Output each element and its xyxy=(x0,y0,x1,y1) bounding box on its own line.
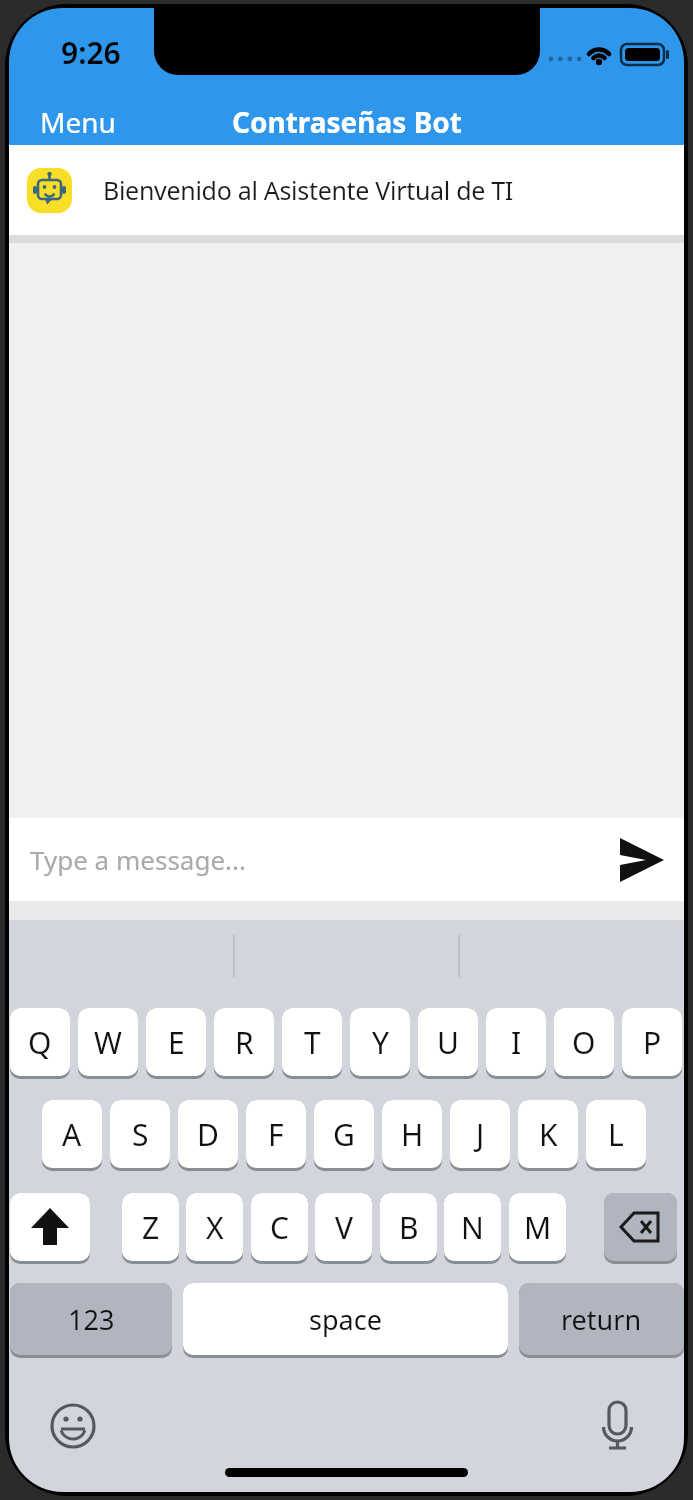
staticText: H xyxy=(401,1114,424,1155)
button[interactable]: B xyxy=(380,1193,437,1261)
button[interactable] xyxy=(43,1396,103,1456)
button[interactable] xyxy=(587,1398,647,1458)
staticText: D xyxy=(197,1114,219,1155)
staticText: L xyxy=(608,1114,624,1155)
button[interactable]: Y xyxy=(350,1008,410,1076)
staticText: R xyxy=(235,1022,254,1063)
staticText: G xyxy=(333,1114,355,1155)
button[interactable]: S xyxy=(110,1100,170,1168)
button[interactable] xyxy=(10,1193,90,1261)
button[interactable]: R xyxy=(214,1008,274,1076)
button[interactable]: Type a message... xyxy=(9,818,684,901)
button[interactable]: H xyxy=(382,1100,442,1168)
staticText: N xyxy=(461,1207,484,1248)
staticText: Y xyxy=(372,1022,389,1063)
staticText: T xyxy=(304,1022,321,1063)
button[interactable]: O xyxy=(554,1008,614,1076)
button[interactable]: space xyxy=(183,1283,508,1355)
staticText: space xyxy=(309,1301,382,1338)
staticText: 123 xyxy=(68,1301,115,1338)
button[interactable]: V xyxy=(315,1193,372,1261)
button[interactable]: U xyxy=(418,1008,478,1076)
button[interactable]: A xyxy=(42,1100,102,1168)
button[interactable]: K xyxy=(518,1100,578,1168)
button[interactable] xyxy=(612,830,672,890)
staticText: J xyxy=(476,1114,485,1155)
staticText: C xyxy=(270,1207,289,1248)
staticText: Bienvenido al Asistente Virtual de TI xyxy=(103,173,513,207)
button[interactable]: N xyxy=(444,1193,501,1261)
button[interactable]: G xyxy=(314,1100,374,1168)
button[interactable]: E xyxy=(146,1008,206,1076)
button[interactable]: D xyxy=(178,1100,238,1168)
button[interactable]: M xyxy=(509,1193,566,1261)
staticText: Contraseñas Bot xyxy=(232,103,462,141)
staticText: Z xyxy=(142,1207,160,1248)
button[interactable]: return xyxy=(519,1283,684,1355)
staticText: B xyxy=(399,1207,419,1248)
staticText: E xyxy=(168,1022,185,1063)
button[interactable]: F xyxy=(246,1100,306,1168)
button[interactable]: Menu xyxy=(29,92,127,152)
button[interactable]: 123 xyxy=(10,1283,172,1355)
staticText: Type a message... xyxy=(30,842,246,877)
staticText: Q xyxy=(28,1022,52,1063)
staticText: S xyxy=(132,1114,149,1155)
staticText: 9:26 xyxy=(61,32,121,73)
staticText: I xyxy=(511,1022,522,1063)
button[interactable] xyxy=(604,1193,677,1261)
staticText: return xyxy=(561,1301,642,1338)
button[interactable]: W xyxy=(78,1008,138,1076)
staticText: A xyxy=(62,1114,82,1155)
staticText: P xyxy=(643,1022,662,1063)
staticText: O xyxy=(572,1022,596,1063)
button[interactable]: C xyxy=(251,1193,308,1261)
staticText: Menu xyxy=(40,103,116,141)
staticText: W xyxy=(94,1022,122,1063)
staticText: K xyxy=(539,1114,558,1155)
button[interactable]: T xyxy=(282,1008,342,1076)
staticText: F xyxy=(268,1114,284,1155)
staticText: X xyxy=(206,1207,224,1248)
button[interactable]: Bienvenido al Asistente Virtual de TI xyxy=(9,145,684,235)
staticText: U xyxy=(437,1022,459,1063)
button[interactable]: J xyxy=(450,1100,510,1168)
staticText: M xyxy=(524,1207,552,1248)
button[interactable]: L xyxy=(586,1100,646,1168)
button[interactable]: Q xyxy=(10,1008,70,1076)
staticText: V xyxy=(335,1207,353,1248)
button[interactable]: P xyxy=(622,1008,682,1076)
button[interactable]: I xyxy=(486,1008,546,1076)
button[interactable]: X xyxy=(186,1193,243,1261)
button[interactable]: Z xyxy=(122,1193,179,1261)
